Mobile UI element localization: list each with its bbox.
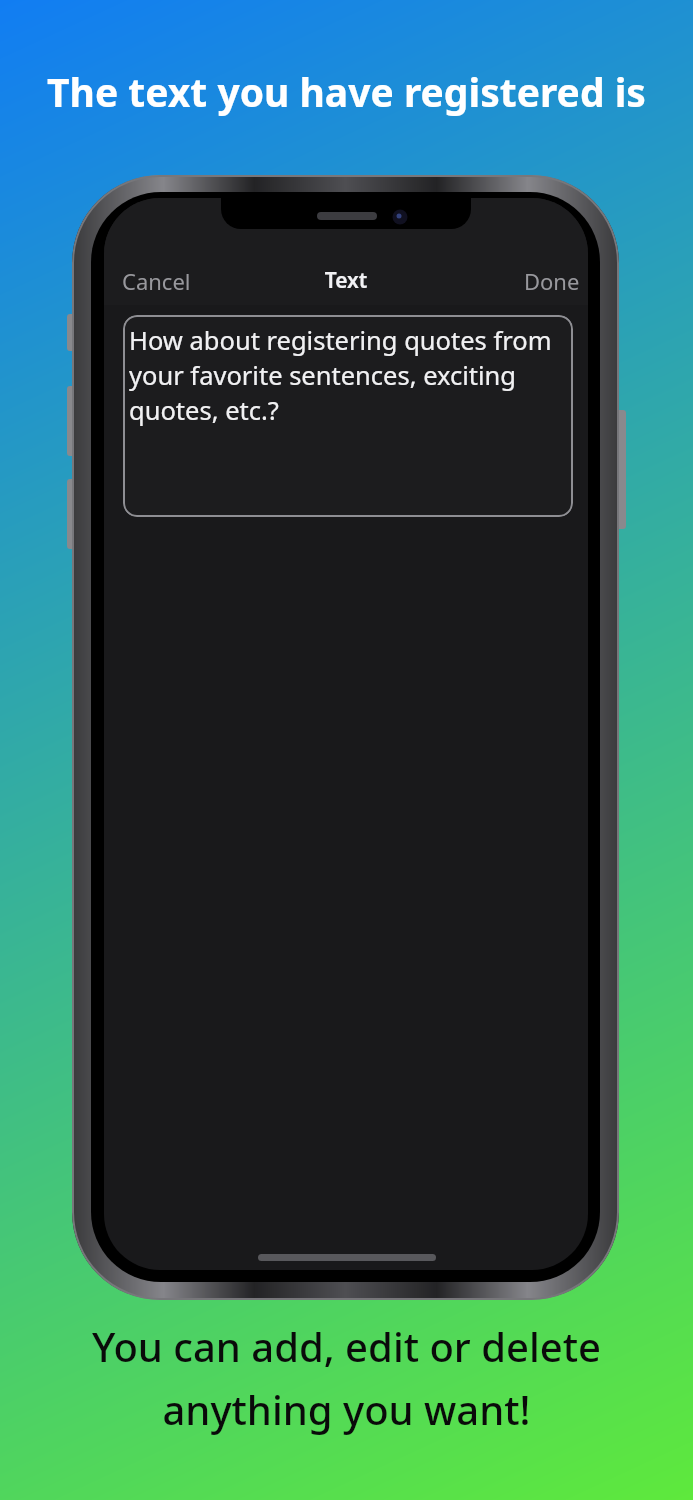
staticText: anything you want! [0, 1382, 693, 1446]
staticText: Cancel [122, 266, 191, 296]
button[interactable]: Cancel [114, 260, 204, 298]
staticText: You can add, edit or delete [0, 1319, 693, 1383]
staticText: your favorite sentences, exciting [129, 358, 517, 393]
button[interactable]: How about registering quotes from [123, 315, 573, 517]
button[interactable]: Done [516, 260, 582, 298]
staticText: The text you have registered is [0, 65, 693, 127]
staticText: quotes, etc.? [129, 393, 279, 428]
staticText: Done [524, 266, 580, 296]
staticText: How about registering quotes from [129, 323, 552, 358]
staticText: Text [104, 266, 588, 300]
